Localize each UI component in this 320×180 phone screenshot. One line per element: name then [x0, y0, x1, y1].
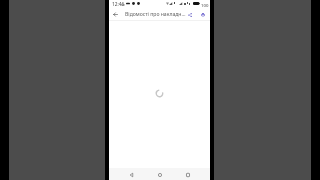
button[interactable]: Back	[125, 168, 138, 180]
staticText: 12:46	[112, 1, 125, 8]
button[interactable]: Recents	[181, 168, 194, 180]
staticText: on	[121, 2, 126, 7]
button[interactable]: Home	[153, 168, 166, 180]
staticText: 100	[201, 2, 209, 8]
button[interactable]: Share	[185, 9, 195, 21]
button[interactable]: Back	[110, 8, 120, 20]
staticText: Відомості про накладн…	[125, 11, 186, 18]
button[interactable]: Print	[198, 9, 208, 21]
